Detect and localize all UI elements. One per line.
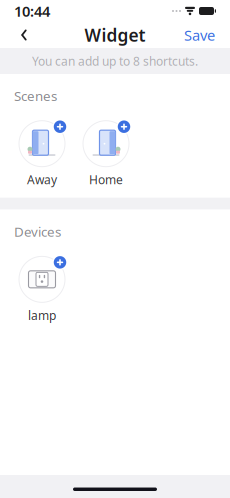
staticText: Home <box>89 172 123 188</box>
staticText: Away <box>27 172 57 188</box>
button[interactable]: Away <box>10 111 74 188</box>
button[interactable]: Save <box>178 20 221 50</box>
staticText: 10:44 <box>14 1 50 21</box>
staticText: You can add up to 8 shortcuts. <box>32 53 198 69</box>
staticText: Save <box>184 25 215 45</box>
staticText: Widget <box>84 23 145 46</box>
staticText: Scenes <box>14 87 57 105</box>
button[interactable]: lamp <box>10 246 74 323</box>
button[interactable]: Back <box>9 20 39 50</box>
button[interactable]: Home <box>74 111 138 188</box>
staticText: Devices <box>14 223 61 240</box>
staticText: lamp <box>28 307 56 323</box>
